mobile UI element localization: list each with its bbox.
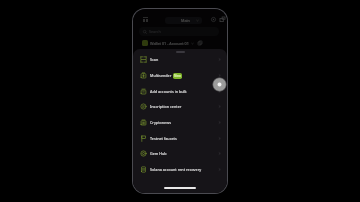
staticText: Search <box>149 29 161 34</box>
button[interactable]: Scan <box>136 52 225 67</box>
button[interactable]: Cryptonews <box>136 115 225 130</box>
staticText: Wallet 01 - Account 01 <box>150 41 189 46</box>
button[interactable]: Inscription center <box>136 99 225 114</box>
staticText: New <box>174 74 181 78</box>
button[interactable]: Gem Hub <box>136 146 225 161</box>
staticText: Inscription center <box>150 104 182 109</box>
staticText: Solana account rent recovery <box>150 167 202 172</box>
button[interactable]: Wallet 01 - Account 01 <box>142 39 203 47</box>
staticText: Main <box>181 18 190 23</box>
staticText: Testnet faucets <box>150 136 177 141</box>
staticText: Cryptonews <box>150 120 171 125</box>
button[interactable]: Multisender <box>136 68 225 83</box>
staticText: Multisender <box>150 73 172 78</box>
button[interactable]: Search <box>139 27 219 36</box>
button[interactable]: Add accounts in bulk <box>136 84 225 99</box>
button[interactable]: Solana account rent recovery <box>136 162 225 177</box>
staticText: Scan <box>150 57 159 62</box>
button[interactable]: Profile <box>209 15 217 23</box>
button[interactable]: Copy address <box>197 40 203 46</box>
staticText: Add accounts in bulk <box>150 89 187 94</box>
button[interactable]: Main <box>165 17 202 24</box>
button[interactable]: Menu <box>141 15 150 24</box>
button[interactable]: Testnet faucets <box>136 131 225 146</box>
staticText: Gem Hub <box>150 151 167 156</box>
button[interactable]: Settings <box>218 15 226 23</box>
